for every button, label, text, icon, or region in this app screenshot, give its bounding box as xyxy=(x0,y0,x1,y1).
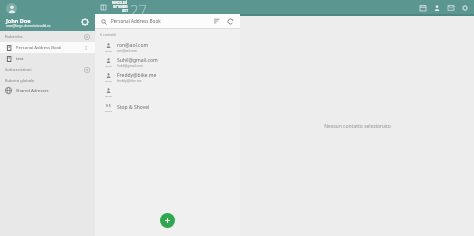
staticText: Shared Adresses xyxy=(16,88,49,94)
staticText: Suhil@gmail.com xyxy=(117,57,158,64)
button[interactable]: eMaIL xyxy=(95,40,240,55)
staticText: eMaIL xyxy=(105,49,112,52)
button[interactable]: S S xyxy=(95,100,240,115)
button[interactable]: Settings xyxy=(79,16,91,28)
staticText: Sottoscrizioni xyxy=(5,67,32,73)
staticText: ron@aol.com xyxy=(117,42,149,49)
staticText: eMaIL xyxy=(105,109,112,112)
staticText: 5 contatti xyxy=(100,32,116,37)
staticText: Stop & Shovel xyxy=(117,104,150,111)
button[interactable]: John Doe xyxy=(0,0,95,31)
button[interactable]: Add Sottoscrizioni xyxy=(83,66,91,74)
staticText: eMaIL xyxy=(105,64,112,67)
button[interactable]: Personal Address Book xyxy=(0,42,95,53)
staticText: user@large-domain.invalid.ex xyxy=(6,24,51,28)
button[interactable]: eMaIL xyxy=(95,70,240,85)
staticText: 27 xyxy=(130,0,148,14)
button[interactable]: test xyxy=(0,53,95,64)
staticText: Freddy@bike.me xyxy=(117,72,157,79)
button[interactable]: Refresh xyxy=(225,16,235,26)
button[interactable]: Sort xyxy=(212,16,222,26)
staticText: 2017 xyxy=(122,9,128,13)
button[interactable]: Contacts xyxy=(431,2,442,13)
staticText: Rubriche xyxy=(5,34,23,40)
button[interactable]: Calendar xyxy=(417,2,428,13)
staticText: Rubrica globale xyxy=(5,78,35,83)
staticText: Personal Address Book xyxy=(111,18,161,24)
button[interactable]: Menu xyxy=(99,3,108,12)
staticText: eMaIL xyxy=(105,79,112,82)
staticText: freddy@bike.me xyxy=(117,79,142,83)
staticText: test xyxy=(16,56,24,62)
button[interactable]: More options xyxy=(82,44,90,52)
staticText: Personal Address Book xyxy=(16,45,62,51)
staticText: Suhil@gmail.com xyxy=(117,64,143,68)
button[interactable]: Add contact xyxy=(160,213,175,228)
staticText: ron@aol.com xyxy=(117,49,137,53)
staticText: MERCOLEDÌ xyxy=(112,1,128,5)
button[interactable]: Mail xyxy=(445,2,456,13)
staticText: John Doe xyxy=(6,17,31,24)
button[interactable]: eMaIL xyxy=(95,55,240,70)
staticText: Nessun contatto selezionato xyxy=(324,123,391,130)
staticText: eMaIL xyxy=(105,94,112,97)
button[interactable]: Settings xyxy=(459,2,470,13)
button[interactable]: Shared Adresses xyxy=(0,85,95,96)
staticText: S S xyxy=(106,103,111,108)
button[interactable]: Add Rubriche xyxy=(83,33,91,41)
button[interactable]: eMaIL xyxy=(95,85,240,100)
staticText: SETTEMBRE xyxy=(113,5,128,9)
